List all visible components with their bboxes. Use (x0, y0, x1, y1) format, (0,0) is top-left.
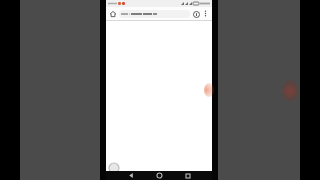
button[interactable] (119, 10, 190, 18)
button[interactable]: Recent apps (183, 171, 192, 180)
button[interactable]: Page info (191, 9, 201, 19)
button[interactable]: Home (155, 171, 164, 180)
button[interactable]: Back (126, 171, 135, 180)
button[interactable]: Home (108, 9, 118, 19)
button[interactable]: More options (201, 9, 210, 18)
